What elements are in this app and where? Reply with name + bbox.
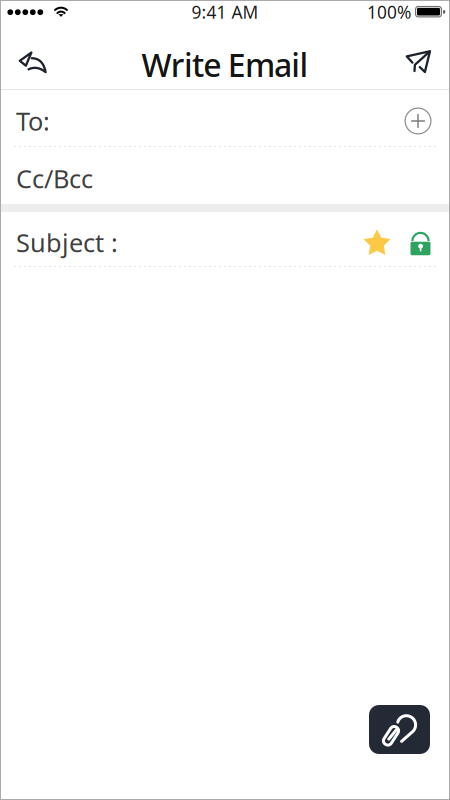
button[interactable]: Encrypt	[409, 230, 431, 256]
staticText: Write Email	[141, 43, 308, 86]
button[interactable]: Attach file	[369, 705, 430, 754]
button[interactable]: Subject :	[0, 215, 340, 269]
button[interactable]: Back	[5, 37, 61, 89]
staticText: Cc/Bcc	[16, 162, 93, 195]
button[interactable]: To:	[0, 93, 390, 149]
staticText: Subject :	[16, 226, 118, 259]
staticText: 9:41 AM	[191, 0, 258, 23]
button[interactable]: Cc/Bcc	[0, 147, 450, 204]
staticText: To:	[16, 104, 50, 138]
button[interactable]: Add recipient	[404, 107, 431, 134]
button[interactable]: Send	[390, 35, 446, 87]
staticText: 100%	[367, 0, 411, 23]
button[interactable]: Mark as important	[362, 228, 392, 258]
